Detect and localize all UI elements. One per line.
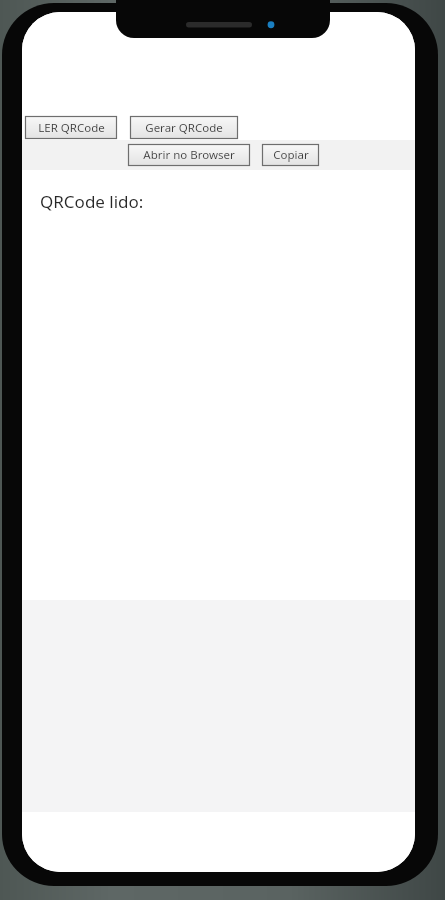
button[interactable]: LER QRCode — [25, 116, 117, 139]
staticText: QRCode lido: — [40, 190, 144, 213]
staticText: LER QRCode — [38, 120, 105, 136]
staticText: Abrir no Browser — [143, 147, 235, 163]
staticText: Copiar — [273, 147, 309, 163]
other: Front camera and speaker — [116, 0, 330, 38]
button[interactable]: Copiar — [262, 144, 319, 166]
button[interactable]: Gerar QRCode — [130, 116, 238, 139]
button[interactable]: Abrir no Browser — [128, 144, 250, 166]
staticText: Gerar QRCode — [145, 120, 223, 136]
